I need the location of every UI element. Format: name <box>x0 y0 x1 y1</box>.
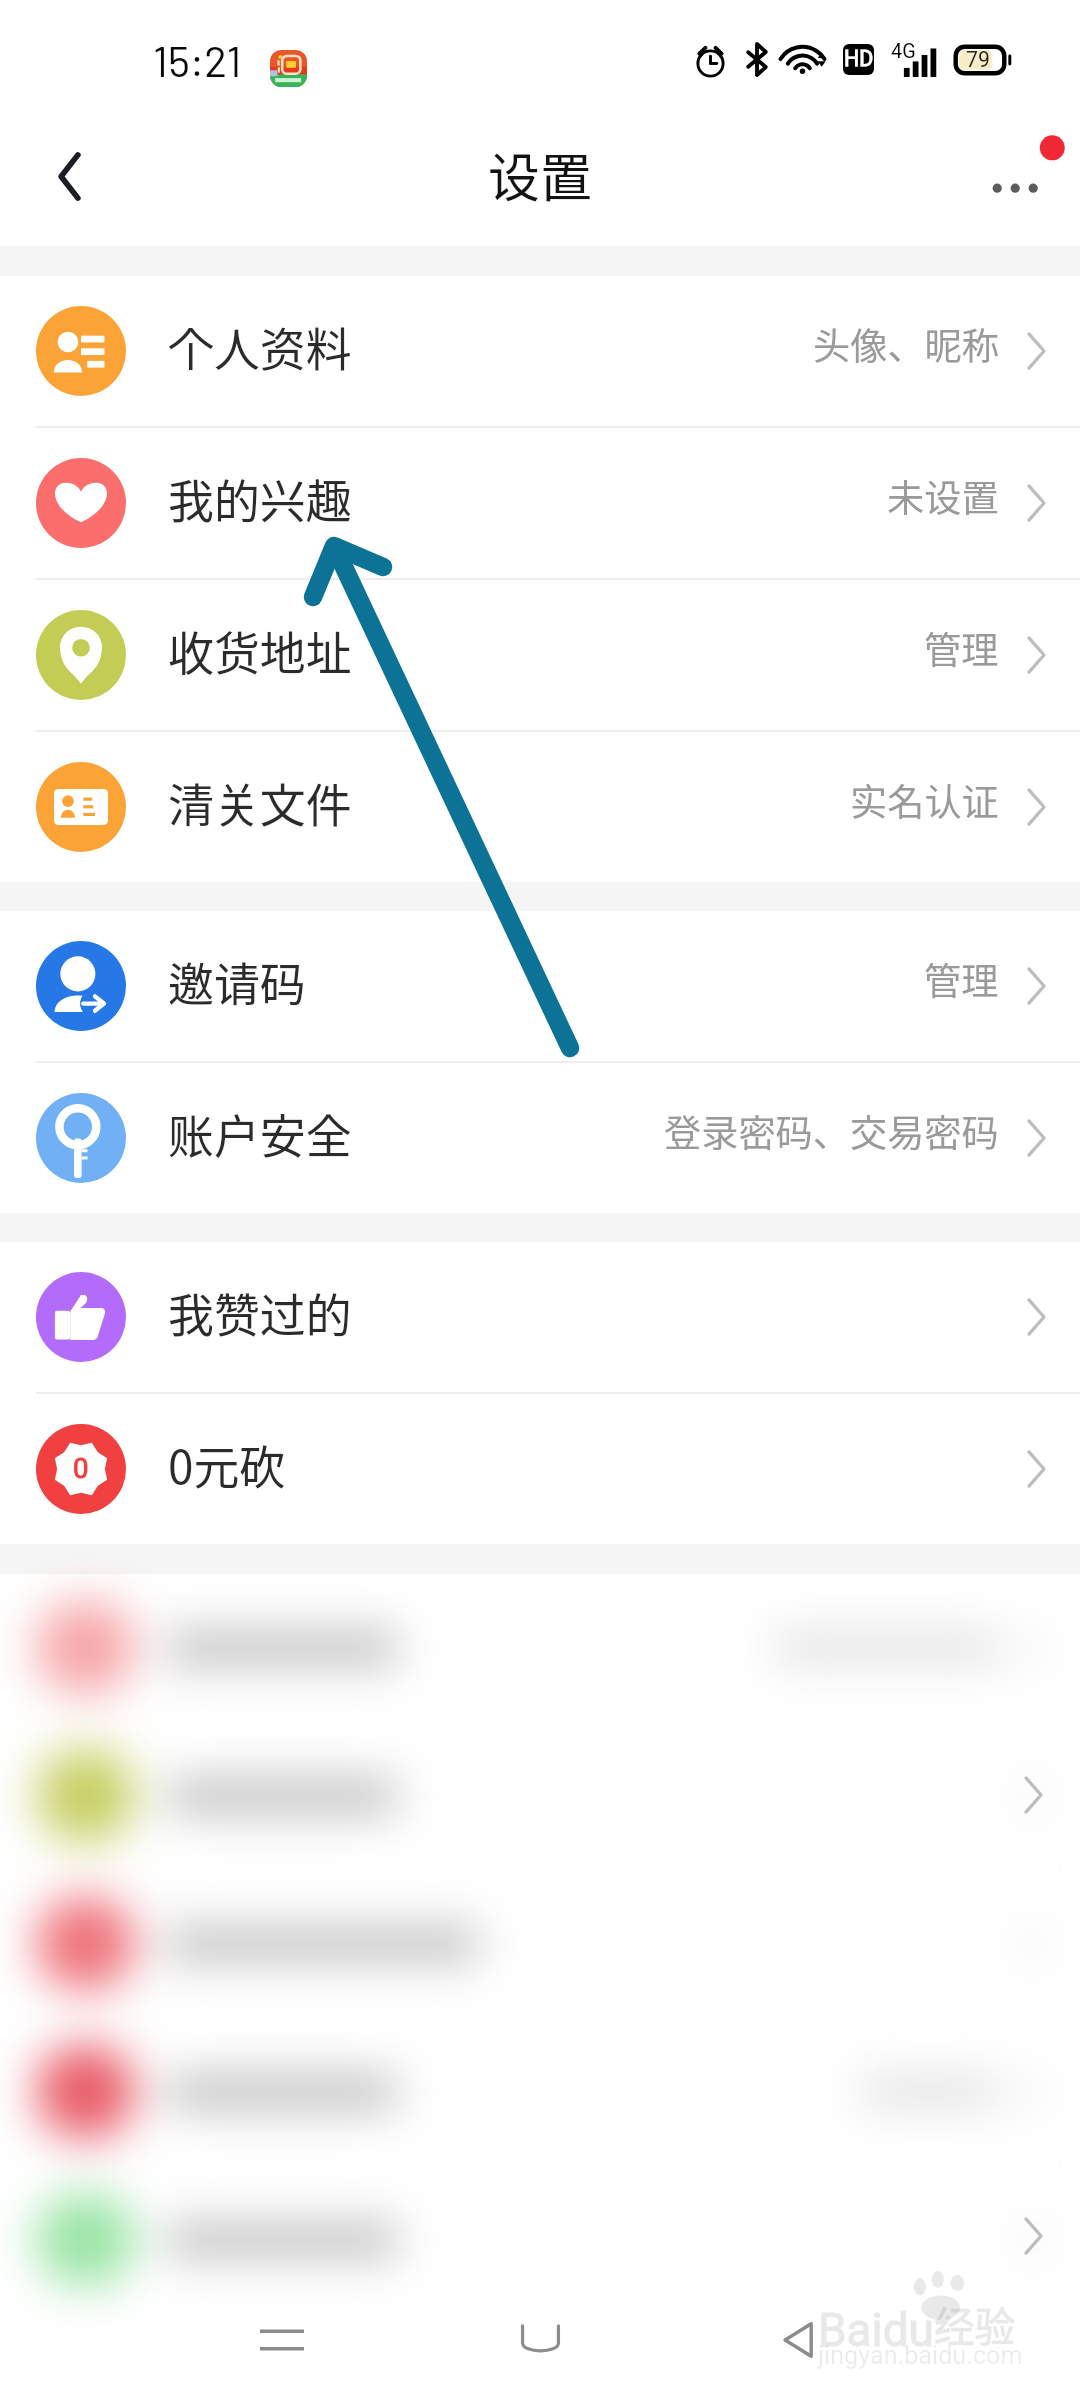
staticText: 15:21 <box>153 34 242 85</box>
staticText: 邀请码 <box>168 948 306 1014</box>
staticText: 0 <box>73 1452 89 1484</box>
staticText: 4G <box>891 40 916 63</box>
button[interactable]: 邀请码 <box>0 911 1080 1061</box>
button[interactable]: 账户安全 <box>0 1063 1080 1213</box>
staticText: jingyan.baidu.com <box>818 2341 1023 2371</box>
staticText: 我赞过的 <box>168 1279 352 1345</box>
staticText: HD <box>844 46 874 71</box>
staticText: 收货地址 <box>168 617 352 683</box>
staticText: 头像、昵称 <box>813 317 999 371</box>
button[interactable]: 收货地址 <box>0 580 1080 730</box>
button[interactable]: 个人资料 <box>0 276 1080 426</box>
staticText: 管理 <box>924 621 999 675</box>
staticText: 实名认证 <box>850 773 999 827</box>
button[interactable]: 我的兴趣 <box>0 428 1080 578</box>
button[interactable]: Back <box>720 2280 1080 2400</box>
button[interactable]: More options <box>900 120 1080 246</box>
staticText: 我的兴趣 <box>168 465 352 531</box>
staticText: 清关文件 <box>168 769 352 835</box>
button[interactable]: Back <box>0 120 138 246</box>
staticText: 设置 <box>488 137 592 212</box>
staticText: Baidu <box>818 2303 934 2357</box>
staticText: 0元砍 <box>168 1431 286 1497</box>
button[interactable]: Recent apps <box>0 2280 360 2400</box>
staticText: 账户安全 <box>168 1100 352 1166</box>
staticText: 未设置 <box>887 469 999 523</box>
staticText: 经验 <box>934 2295 1015 2354</box>
staticText: 登录密码、交易密码 <box>664 1104 999 1158</box>
staticText: 79 <box>966 47 990 72</box>
staticText: 管理 <box>924 952 999 1006</box>
button[interactable]: Home <box>360 2280 720 2400</box>
button[interactable]: 我赞过的 <box>0 1242 1080 1392</box>
button[interactable]: 0 <box>0 1394 1080 1544</box>
staticText: 个人资料 <box>168 313 352 379</box>
button[interactable]: 清关文件 <box>0 732 1080 882</box>
